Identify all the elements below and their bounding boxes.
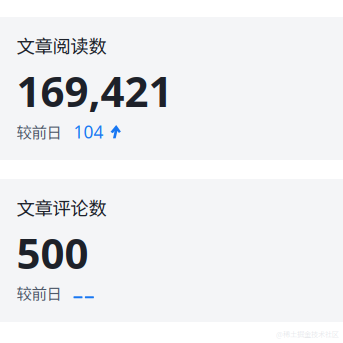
- staticText: 文章评论数: [16, 194, 106, 221]
- staticText: @稀土掘金技术社区: [276, 329, 339, 339]
- staticText: 较前日: [16, 120, 61, 143]
- staticText: 500: [16, 224, 88, 281]
- staticText: 较前日: [16, 282, 61, 304]
- button[interactable]: 文章阅读数: [0, 17, 343, 160]
- button[interactable]: 文章评论数: [0, 179, 343, 322]
- staticText: 104: [73, 120, 103, 143]
- staticText: 169,421: [16, 62, 172, 119]
- staticText: 文章阅读数: [16, 32, 106, 59]
